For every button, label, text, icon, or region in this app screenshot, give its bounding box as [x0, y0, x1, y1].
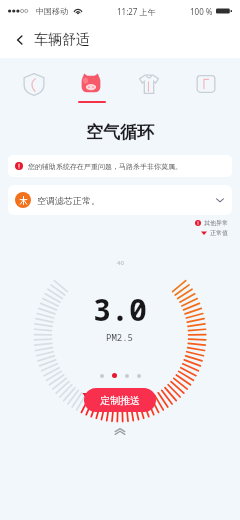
button[interactable] — [112, 373, 117, 378]
button[interactable]: 您的辅助系统存在严重问题，马路杀手非你莫属。 — [8, 155, 232, 177]
button[interactable]: 防护盾 — [10, 62, 58, 106]
staticText: 40 — [117, 259, 124, 267]
staticText: 空气循环 — [0, 122, 240, 143]
button[interactable]: 展开 — [109, 420, 131, 442]
staticText: 11:27 上午 — [117, 6, 156, 17]
staticText: 100 % — [190, 6, 213, 17]
button[interactable]: 空气 — [67, 62, 115, 106]
staticText: 定制推送 — [100, 394, 140, 407]
button[interactable]: 定制推送 — [84, 388, 156, 412]
staticText: 正常值 — [210, 229, 228, 237]
staticText: 您的辅助系统存在严重问题，马路杀手非你莫属。 — [28, 162, 182, 171]
staticText: 其他异常 — [204, 219, 228, 227]
button[interactable]: 衣物 — [125, 62, 173, 106]
button[interactable] — [137, 374, 141, 378]
staticText: 车辆舒适 — [34, 31, 90, 49]
staticText: 空调滤芯正常。 — [37, 195, 100, 206]
button[interactable] — [125, 374, 129, 378]
button[interactable]: 空调滤芯正常。 — [8, 185, 232, 215]
button[interactable]: 座椅 — [182, 62, 230, 106]
staticText: PM2.5 — [106, 331, 134, 343]
staticText: 中国移动 — [36, 6, 68, 16]
button[interactable] — [100, 374, 104, 378]
staticText: 3.0 — [93, 289, 147, 330]
button[interactable]: 返回 — [10, 30, 30, 50]
